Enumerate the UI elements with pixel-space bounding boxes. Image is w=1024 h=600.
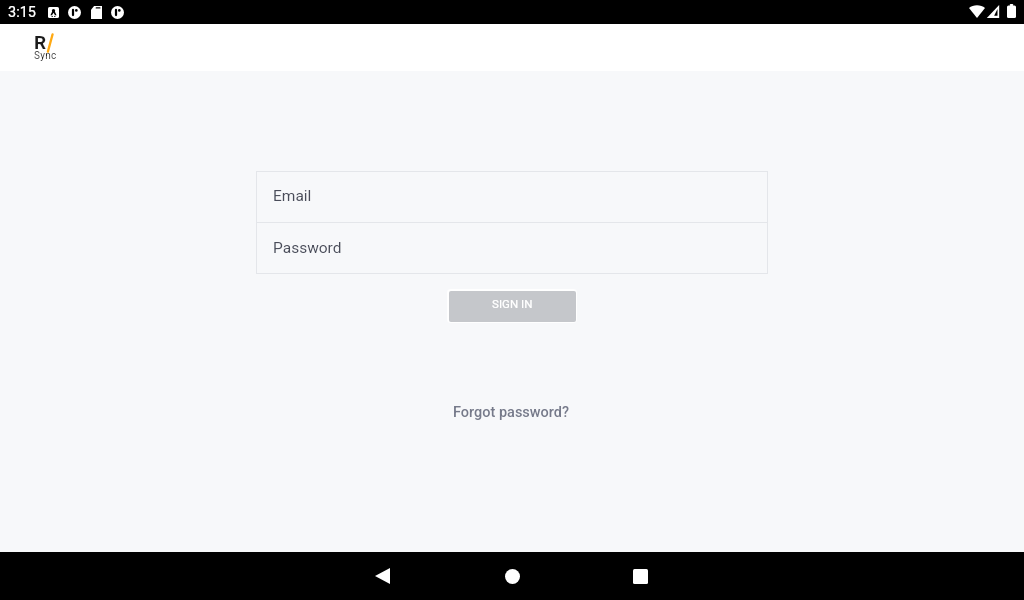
- staticText: 3:15: [8, 4, 36, 21]
- staticText: R: [34, 31, 47, 53]
- staticText: Forgot password?: [453, 404, 570, 421]
- button[interactable]: Forgot password?: [441, 398, 582, 427]
- button[interactable]: Recent apps: [617, 552, 665, 600]
- button[interactable]: SIGN IN: [449, 291, 576, 322]
- staticText: Password: [273, 239, 342, 257]
- staticText: Email: [273, 187, 312, 205]
- button[interactable]: Back: [359, 552, 407, 600]
- button[interactable]: Home: [488, 552, 536, 600]
- button[interactable]: Password: [256, 223, 768, 274]
- button[interactable]: Email: [256, 171, 768, 222]
- staticText: Sync: [34, 50, 57, 62]
- staticText: SIGN IN: [492, 297, 533, 310]
